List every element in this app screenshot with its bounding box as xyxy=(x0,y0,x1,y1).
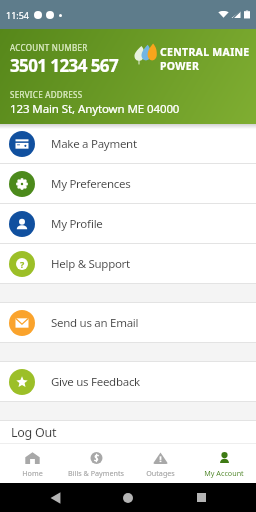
staticText: My Profile xyxy=(51,216,103,232)
button[interactable]: Log Out xyxy=(0,421,256,443)
staticText: 123 Main St, Anytown ME 04000 xyxy=(10,101,180,117)
staticText: Make a Payment xyxy=(51,136,137,152)
staticText: CENTRAL MAINE xyxy=(160,45,250,59)
staticText: ACCOUNT NUMBER xyxy=(10,42,88,53)
button[interactable]: Recents xyxy=(186,483,216,512)
staticText: 11:54 xyxy=(6,9,30,21)
staticText: SERVICE ADDRESS xyxy=(10,89,83,100)
button[interactable]: Outages xyxy=(128,444,192,483)
staticText: Home xyxy=(22,468,43,478)
staticText: Bills & Payments xyxy=(68,468,124,478)
button[interactable]: Back xyxy=(40,483,70,512)
button[interactable]: My Profile xyxy=(0,204,256,243)
staticText: ? xyxy=(20,258,25,270)
button[interactable]: My Account xyxy=(192,444,256,483)
staticText: Send us an Email xyxy=(51,315,139,331)
button[interactable]: Give us Feedback xyxy=(0,362,256,401)
button[interactable]: Send us an Email xyxy=(0,303,256,342)
staticText: Outages xyxy=(146,468,175,478)
staticText: My Account xyxy=(204,468,244,478)
button[interactable]: Home xyxy=(0,444,64,483)
button[interactable]: ? xyxy=(0,244,256,283)
button[interactable]: Home xyxy=(113,483,143,512)
button[interactable]: My Preferences xyxy=(0,164,256,203)
staticText: Help & Support xyxy=(51,256,130,272)
button[interactable]: Make a Payment xyxy=(0,124,256,163)
staticText: 3501 1234 567 xyxy=(10,54,119,77)
button[interactable]: Bills & Payments xyxy=(64,444,128,483)
staticText: Give us Feedback xyxy=(51,374,140,390)
staticText: POWER xyxy=(160,59,200,73)
staticText: My Preferences xyxy=(51,176,131,192)
staticText: Log Out xyxy=(11,424,57,441)
